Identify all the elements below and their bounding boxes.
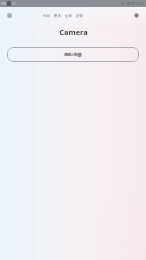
staticText: 相机/相册 [64, 52, 82, 57]
staticText: 文库 [65, 14, 72, 18]
button[interactable]: 消息 [41, 12, 52, 20]
button[interactable]: 设置 [74, 12, 85, 20]
button[interactable]: 文库 [63, 12, 74, 20]
staticText: Camera [59, 27, 88, 37]
button[interactable]: 图库 [52, 12, 63, 20]
button[interactable]: More options [132, 11, 141, 20]
staticText: 设置 [76, 14, 83, 18]
staticText: 消息 [43, 14, 50, 18]
button[interactable]: 相机/相册 [7, 47, 139, 62]
staticText: 图库 [54, 14, 61, 18]
button[interactable]: Back [5, 11, 14, 20]
